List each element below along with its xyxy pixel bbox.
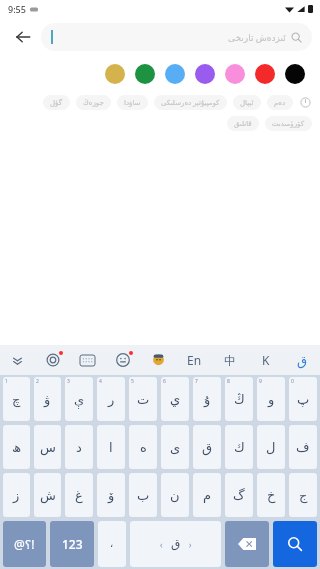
button[interactable]: ب xyxy=(129,473,157,517)
button[interactable]: Emoji xyxy=(105,345,140,375)
button[interactable]: گ xyxy=(225,473,253,517)
button[interactable]: كومپيۇتېر دەرسلىكى xyxy=(154,95,227,110)
button[interactable]: 8 xyxy=(225,377,253,421)
button[interactable]: Collapse xyxy=(0,345,35,375)
button[interactable]: 5 xyxy=(129,377,157,421)
staticText: و xyxy=(268,392,275,407)
staticText: ك xyxy=(234,440,245,455)
button[interactable]: غ xyxy=(65,473,93,517)
staticText: د xyxy=(76,440,82,455)
staticText: س xyxy=(40,440,56,455)
staticText: 0 xyxy=(291,378,294,385)
button[interactable]: ە xyxy=(129,425,157,469)
staticText: ب xyxy=(137,488,150,503)
button[interactable]: 3 xyxy=(65,377,93,421)
button[interactable]: ا xyxy=(97,425,125,469)
button[interactable]: ش xyxy=(34,473,61,517)
button[interactable]: س xyxy=(34,425,61,469)
button[interactable]: ك xyxy=(225,425,253,469)
staticText: گۈل xyxy=(50,99,63,107)
staticText: ر xyxy=(108,392,115,407)
button[interactable]: Search xyxy=(273,521,317,567)
button[interactable]: م xyxy=(193,473,221,517)
button[interactable]: ئېپال xyxy=(233,95,261,110)
button[interactable]: @؟! xyxy=(3,521,46,567)
staticText: 9 xyxy=(259,378,262,385)
button[interactable]: ن xyxy=(161,473,189,517)
button[interactable]: ى xyxy=(161,425,189,469)
button[interactable]: 123 xyxy=(50,521,94,567)
staticText: 8 xyxy=(227,378,230,385)
button[interactable]: جوزەڭ xyxy=(76,95,111,110)
button[interactable]: قانلىق xyxy=(227,116,259,131)
button[interactable]: ئىزدەش تارىخى xyxy=(41,23,312,51)
button[interactable]: ل xyxy=(257,425,285,469)
button[interactable]: ‹ xyxy=(130,521,221,567)
staticText: كۆرۈمىدىت xyxy=(272,120,305,128)
staticText: › xyxy=(189,539,192,550)
button[interactable]: Settings xyxy=(35,345,70,375)
button[interactable]: Colour xyxy=(255,64,275,84)
staticText: 3 xyxy=(67,378,70,385)
staticText: 9:55 xyxy=(8,3,26,15)
staticText: ش xyxy=(40,488,56,503)
staticText: گ xyxy=(233,488,245,503)
staticText: 7 xyxy=(195,378,198,385)
staticText: جوزەڭ xyxy=(83,99,104,107)
staticText: ساۋدا xyxy=(124,99,141,107)
button[interactable]: 0 xyxy=(289,377,317,421)
button[interactable]: 2 xyxy=(34,377,61,421)
button[interactable]: Colour xyxy=(195,64,215,84)
button[interactable]: 9 xyxy=(257,377,285,421)
staticText: ت xyxy=(137,392,150,407)
button[interactable]: 7 xyxy=(193,377,221,421)
staticText: ج xyxy=(299,488,308,503)
button[interactable]: 中 xyxy=(212,345,248,375)
staticText: ە xyxy=(140,440,147,455)
staticText: ل xyxy=(266,440,276,455)
button[interactable]: د xyxy=(65,425,93,469)
staticText: ئېپال xyxy=(240,99,254,107)
button[interactable]: كۆرۈمىدىت xyxy=(265,116,312,131)
button[interactable]: ساۋدا xyxy=(117,95,148,110)
button[interactable]: 1 xyxy=(3,377,30,421)
button[interactable]: Mascot xyxy=(140,345,176,375)
button[interactable]: ز xyxy=(3,473,30,517)
button[interactable]: دەم xyxy=(267,95,293,110)
button[interactable]: گۈل xyxy=(43,95,70,110)
button[interactable]: ق xyxy=(284,345,320,375)
button[interactable]: Colour xyxy=(165,64,185,84)
staticText: 6 xyxy=(163,378,166,385)
button[interactable]: En xyxy=(176,345,212,375)
staticText: ، xyxy=(110,538,114,550)
staticText: چ xyxy=(12,392,21,407)
button[interactable]: K xyxy=(248,345,284,375)
staticText: ۇ xyxy=(204,392,211,407)
button[interactable]: Back xyxy=(8,22,38,52)
button[interactable]: 4 xyxy=(97,377,125,421)
staticText: 1 xyxy=(5,378,8,385)
button[interactable]: Keyboard layout xyxy=(70,345,105,375)
button[interactable]: ج xyxy=(289,473,317,517)
staticText: ۋ xyxy=(44,392,51,407)
button[interactable]: History xyxy=(299,96,312,109)
staticText: 2 xyxy=(36,378,39,385)
button[interactable]: ف xyxy=(289,425,317,469)
staticText: م xyxy=(203,488,212,503)
button[interactable]: Colour xyxy=(225,64,245,84)
staticText: غ xyxy=(75,488,83,503)
button[interactable]: Colour xyxy=(105,64,125,84)
staticText: ڭ xyxy=(234,392,245,407)
button[interactable]: Backspace xyxy=(225,521,269,567)
staticText: K xyxy=(262,352,270,368)
button[interactable]: خ xyxy=(257,473,285,517)
button[interactable]: ۆ xyxy=(97,473,125,517)
button[interactable]: Colour xyxy=(285,64,305,84)
button[interactable]: Colour xyxy=(135,64,155,84)
button[interactable]: ق xyxy=(193,425,221,469)
button[interactable]: 6 xyxy=(161,377,189,421)
button[interactable]: ، xyxy=(98,521,126,567)
staticText: ز xyxy=(13,488,20,503)
staticText: كومپيۇتېر دەرسلىكى xyxy=(161,98,220,108)
button[interactable]: ھ xyxy=(3,425,30,469)
